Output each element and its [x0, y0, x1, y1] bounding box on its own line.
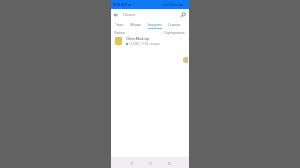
button[interactable]: Back: [127, 159, 135, 167]
staticText: ClientMod.zip: [126, 36, 149, 41]
button[interactable]: Back: [113, 12, 119, 18]
button[interactable]: Медиа: [128, 20, 143, 29]
button[interactable]: Search: [179, 11, 186, 18]
button[interactable]: ClientMod.zip: [111, 35, 189, 47]
button[interactable]: Home: [146, 159, 154, 167]
staticText: Загрузки: [147, 22, 162, 26]
button[interactable]: Ссылки: [166, 20, 182, 29]
staticText: 12,4 МБ | 17:45 сегодня: [129, 42, 160, 46]
button[interactable]: Recents: [165, 159, 173, 167]
button[interactable]: Чаты: [111, 20, 128, 29]
staticText: Сортировать: [164, 30, 185, 34]
staticText: Поиск: [123, 12, 136, 18]
staticText: Файлы: [114, 30, 126, 34]
staticText: Ссылки: [168, 22, 180, 26]
staticText: Чаты: [115, 22, 124, 26]
button[interactable]: Загрузки: [143, 20, 166, 29]
staticText: Медиа: [130, 22, 141, 26]
